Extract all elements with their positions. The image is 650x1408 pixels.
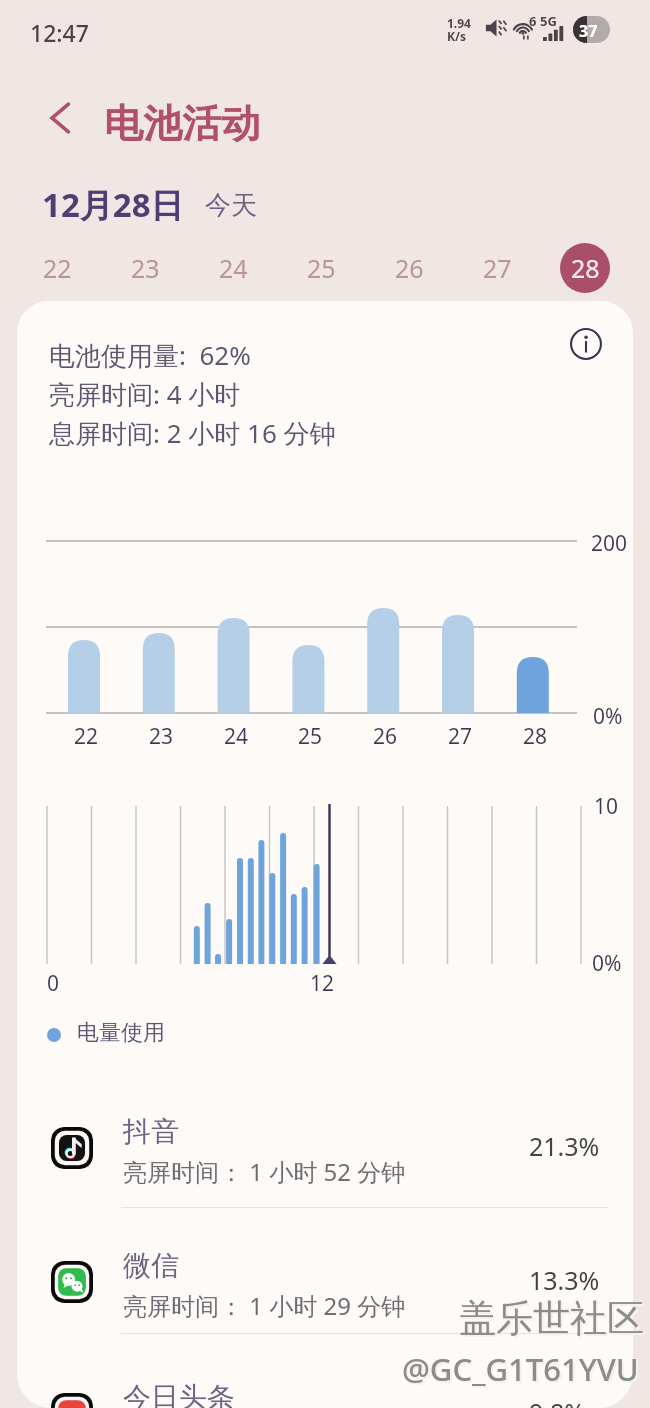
staticText: 27 <box>483 251 512 285</box>
staticText: 25 <box>298 722 323 751</box>
staticText: 28 <box>571 251 600 285</box>
staticText: 200 <box>591 529 628 558</box>
staticText: 37 <box>579 20 598 42</box>
staticText: 22 <box>43 251 72 285</box>
staticText: 0 <box>47 969 60 998</box>
staticText: 1.94 <box>447 15 471 31</box>
staticText: 6 <box>529 12 537 30</box>
staticText: 24 <box>224 722 249 751</box>
staticText: 12 <box>310 969 335 998</box>
staticText: 0% <box>592 949 622 978</box>
staticText: 24 <box>219 251 248 285</box>
staticText: 电量使用 <box>77 1019 165 1047</box>
button[interactable]: 今日头条 <box>17 1369 633 1408</box>
staticText: 23 <box>149 722 174 751</box>
staticText: @GC_G1T61YVU <box>404 1350 641 1392</box>
button[interactable]: Back <box>38 96 82 140</box>
staticText: 电池活动 <box>104 99 260 148</box>
staticText: 27 <box>448 722 473 751</box>
staticText: 息屏时间: 2 小时 16 分钟 <box>49 415 336 451</box>
staticText: 9.8% <box>529 1395 586 1408</box>
button[interactable]: 28 <box>557 240 613 296</box>
staticText: 盖乐世社区 <box>461 1297 646 1344</box>
staticText: 亮屏时间: 4 小时 <box>49 376 241 412</box>
staticText: 12月28日 <box>42 182 184 227</box>
staticText: 10 <box>594 792 619 821</box>
staticText: 21.3% <box>529 1129 600 1163</box>
button[interactable]: 微信 <box>17 1237 633 1343</box>
staticText: 28 <box>523 722 548 751</box>
staticText: 电池使用量: 62% <box>49 337 251 373</box>
button[interactable]: 25 <box>293 240 349 296</box>
staticText: 22 <box>74 722 99 751</box>
button[interactable]: 24 <box>205 240 261 296</box>
button[interactable]: 22 <box>29 240 85 296</box>
staticText: 5G <box>540 12 557 30</box>
staticText: 0% <box>593 702 623 731</box>
staticText: 今天 <box>205 189 257 222</box>
staticText: 微信 <box>123 1248 179 1283</box>
staticText: 26 <box>373 722 398 751</box>
staticText: 23 <box>131 251 160 285</box>
staticText: 今日头条 <box>123 1380 235 1408</box>
button[interactable]: 27 <box>469 240 525 296</box>
button[interactable]: 23 <box>117 240 173 296</box>
staticText: 26 <box>395 251 424 285</box>
staticText: 25 <box>307 251 336 285</box>
staticText: 13.3% <box>529 1263 600 1297</box>
staticText: 亮屏时间： 1 小时 29 分钟 <box>123 1289 406 1322</box>
staticText: 亮屏时间： 1 小时 52 分钟 <box>123 1155 406 1188</box>
staticText: 抖音 <box>123 1114 179 1149</box>
staticText: @GC_G1T61YVU <box>402 1348 639 1390</box>
staticText: 盖乐世社区 <box>459 1295 644 1342</box>
staticText: 12:47 <box>30 17 89 48</box>
button[interactable]: 抖音 <box>17 1103 633 1209</box>
staticText: K/s <box>447 28 466 44</box>
button[interactable]: 26 <box>381 240 437 296</box>
button[interactable]: Information <box>564 322 608 366</box>
